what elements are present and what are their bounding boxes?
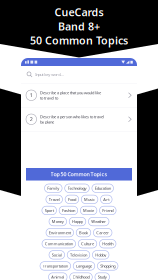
button[interactable]: Animal (48, 273, 67, 280)
staticText: Television (70, 252, 87, 257)
staticText: Travel (49, 197, 60, 202)
button[interactable]: Childhood (70, 273, 92, 280)
staticText: Language (76, 263, 92, 269)
staticText: 2 (30, 116, 33, 123)
staticText: Art (103, 197, 109, 202)
staticText: Band 8+ (58, 19, 100, 33)
staticText: Animal (51, 274, 64, 280)
button[interactable]: Sport (42, 206, 56, 215)
button[interactable]: Social (49, 251, 65, 259)
button[interactable]: Top 50 Common Topics (26, 168, 132, 180)
button[interactable]: Study (95, 273, 109, 280)
staticText: Sport (45, 208, 54, 213)
staticText: Career (96, 230, 109, 235)
button[interactable]: Transportation (40, 262, 71, 270)
staticText: 50 Common Topics (30, 33, 128, 47)
button[interactable]: Food (65, 195, 79, 204)
staticText: Communication (45, 241, 73, 246)
staticText: Music (84, 197, 95, 202)
staticText: Movie (83, 208, 94, 213)
button[interactable]: Friend (99, 206, 116, 215)
staticText: Environment (49, 230, 71, 235)
button[interactable]: Hobby (92, 251, 109, 259)
staticText: Technology (67, 186, 86, 191)
staticText: by plane (40, 119, 54, 124)
button[interactable]: Money (49, 217, 67, 226)
staticText: Fashion (62, 208, 75, 213)
button[interactable]: Music (81, 195, 98, 204)
staticText: Shopping (100, 263, 115, 269)
button[interactable]: Language (73, 262, 95, 270)
staticText: Childhood (72, 274, 89, 280)
staticText: Study (98, 274, 107, 280)
staticText: Social (52, 252, 62, 257)
button[interactable]: Travel (46, 195, 62, 204)
button[interactable]: Fashion (59, 206, 78, 215)
button[interactable]: Career (93, 228, 112, 237)
button[interactable]: Book (76, 228, 91, 237)
staticText: Family (47, 186, 59, 191)
button[interactable]: Happy (69, 217, 86, 226)
button[interactable]: Communication (42, 239, 76, 248)
staticText: Input key word.... (35, 72, 64, 77)
staticText: Describe a person who likes to travel (40, 114, 104, 119)
staticText: Book (79, 230, 88, 235)
staticText: Culture (81, 241, 94, 246)
staticText: Describe a place that you would like (40, 90, 101, 95)
staticText: Hobby (95, 252, 106, 257)
button[interactable]: Environment (46, 228, 74, 237)
staticText: Happy (72, 219, 83, 224)
button[interactable]: Technology (65, 184, 89, 192)
button[interactable]: Health (99, 239, 116, 248)
button[interactable]: Shopping (97, 262, 118, 270)
staticText: Weather (91, 219, 106, 224)
staticText: CueCards (54, 5, 103, 19)
button[interactable]: 1 (21, 83, 137, 107)
button[interactable]: Culture (78, 239, 97, 248)
staticText: 1 (30, 92, 33, 99)
button[interactable]: Art (100, 195, 112, 204)
staticText: Education (95, 186, 111, 191)
staticText: Transportation (43, 263, 68, 269)
staticText: to travel to (40, 95, 58, 100)
staticText: Friend (102, 208, 113, 213)
staticText: Health (102, 241, 113, 246)
button[interactable]: Weather (88, 217, 109, 226)
button[interactable]: 2 (21, 107, 137, 131)
button[interactable]: Family (44, 184, 62, 192)
button[interactable]: Movie (80, 206, 97, 215)
staticText: Top 50 Common Topics (50, 171, 107, 178)
button[interactable]: Television (67, 251, 90, 259)
staticText: Food (68, 197, 76, 202)
button[interactable]: Education (92, 184, 113, 192)
staticText: Money (52, 219, 64, 224)
